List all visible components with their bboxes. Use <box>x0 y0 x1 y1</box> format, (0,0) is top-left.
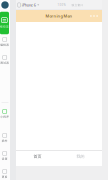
staticText: iPhone 6 <box>22 2 36 8</box>
button[interactable]: 编辑器 <box>0 37 9 47</box>
button[interactable]: 独立窗口 <box>72 3 84 7</box>
button[interactable]: 更多 <box>0 169 9 179</box>
button[interactable]: 100% <box>58 3 66 7</box>
staticText: 设置 <box>2 157 8 161</box>
staticText: 首页 <box>33 154 41 159</box>
staticText: Morning Man <box>45 13 72 19</box>
button[interactable]: 调试器 <box>0 55 9 65</box>
button[interactable]: 设置 <box>0 151 9 161</box>
button[interactable]: 模拟器 <box>0 12 9 34</box>
button[interactable]: 插件 <box>0 133 9 143</box>
staticText: 我的 <box>76 154 84 159</box>
staticText: 模拟器 <box>0 25 9 28</box>
staticText: 小程序 <box>0 115 9 119</box>
button[interactable]: 小程序 <box>0 109 9 119</box>
button[interactable]: iPhone 6 <box>16 2 39 8</box>
staticText: 调试器 <box>0 61 9 65</box>
staticText: 独立窗口 <box>72 3 84 7</box>
button[interactable]: 我的 <box>59 151 102 166</box>
staticText: 编辑器 <box>0 43 9 47</box>
button[interactable]: More <box>88 13 99 19</box>
staticText: 插件 <box>2 139 8 143</box>
button[interactable]: 首页 <box>16 151 59 166</box>
staticText: 更多 <box>2 175 8 179</box>
staticText: 100% <box>58 3 66 7</box>
